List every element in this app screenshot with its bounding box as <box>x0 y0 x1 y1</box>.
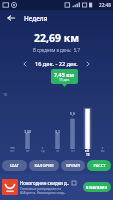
button[interactable]: ШАГ <box>2 160 27 171</box>
staticText: 3,1 <box>55 129 60 134</box>
staticText: ВРЕМЯ <box>66 163 80 168</box>
staticText: 22:48 <box>99 2 111 8</box>
staticText: чт <box>56 148 60 153</box>
staticText: сб <box>85 148 90 153</box>
staticText: В МАГАЗИН <box>86 185 108 190</box>
button[interactable]: ВРЕМЯ <box>61 160 85 171</box>
staticText: КАЛОРИЯ <box>34 163 54 168</box>
staticText: AliExpress. Новогодние скид.. <box>20 191 66 195</box>
button[interactable]: 7,45 км <box>54 71 75 82</box>
button[interactable]: Следующая неделя <box>83 59 93 69</box>
staticText: 19 дек. <box>59 78 70 82</box>
staticText: Новогодние скидки д.. <box>20 180 70 186</box>
button[interactable]: Назад <box>4 11 18 25</box>
staticText: вт <box>26 148 30 153</box>
staticText: вс <box>101 148 105 153</box>
button[interactable]: Новогодние скидки д.. <box>2 174 111 200</box>
staticText: ШАГ <box>10 163 19 168</box>
staticText: Тотальные распродажи на <box>20 187 61 191</box>
staticText: пт <box>71 148 75 153</box>
button[interactable]: РАССТ <box>87 160 111 171</box>
button[interactable]: КАЛОРИЯ <box>29 160 59 171</box>
staticText: В среднем в день: 5,7 <box>33 47 80 53</box>
staticText: 3,08 <box>24 129 31 134</box>
staticText: пн <box>10 148 15 153</box>
staticText: 5,6 <box>70 111 75 116</box>
button[interactable]: В МАГАЗИН <box>86 182 108 192</box>
button[interactable]: Предыдущая неделя <box>20 59 30 69</box>
staticText: 19 <box>86 153 90 157</box>
staticText: РАССТ <box>93 163 106 168</box>
staticText: 10 <box>3 92 8 97</box>
staticText: 16 дек. - 22 дек. <box>35 60 78 68</box>
staticText: ср <box>41 148 45 153</box>
staticText: 22,69 км <box>34 31 80 45</box>
staticText: Неделя <box>24 14 48 23</box>
staticText: 7,45 км <box>54 71 75 78</box>
